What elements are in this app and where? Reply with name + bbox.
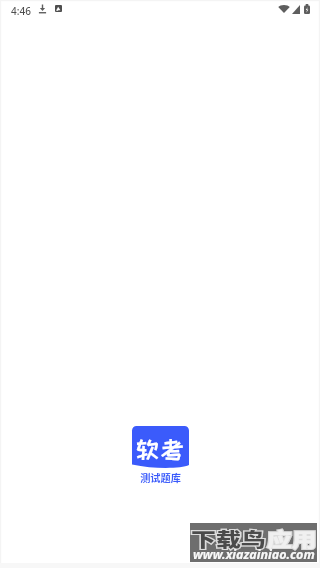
- staticText: www.xiazainiao.com: [193, 546, 315, 563]
- other: Downloads: [38, 4, 47, 13]
- staticText: 下载鸟: [191, 525, 267, 553]
- button[interactable]: 软考: [132, 426, 189, 482]
- staticText: 下载鸟: [191, 525, 267, 553]
- other: Wi-Fi: [278, 4, 290, 13]
- staticText: 软考: [136, 437, 186, 462]
- staticText: 应用: [267, 525, 318, 553]
- staticText: 4:46: [11, 4, 31, 18]
- staticText: 测试题库: [138, 470, 183, 485]
- other: Battery: [304, 4, 310, 14]
- other: Mobile signal: [292, 5, 300, 14]
- staticText: 应用: [267, 525, 318, 553]
- other: Screenshot: [55, 5, 62, 12]
